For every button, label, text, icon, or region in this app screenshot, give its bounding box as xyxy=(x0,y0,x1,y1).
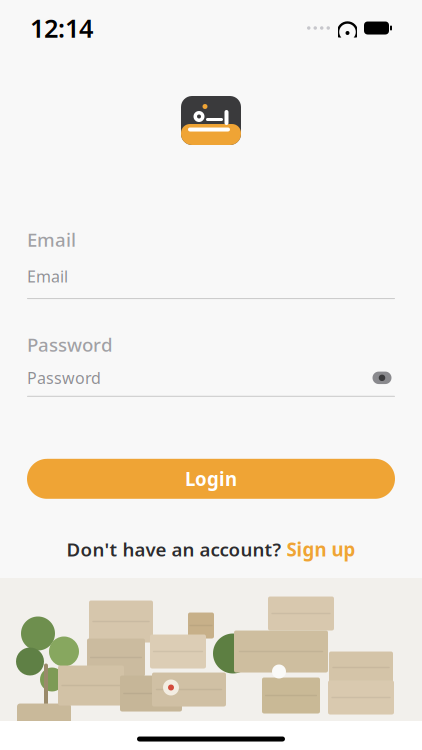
button[interactable]: Email xyxy=(27,252,395,299)
staticText: Sign up xyxy=(286,537,355,562)
staticText: Login xyxy=(185,466,237,491)
staticText: 12:14 xyxy=(30,11,93,45)
button[interactable]: Password xyxy=(27,357,395,397)
staticText: Email xyxy=(27,227,76,252)
staticText: Password xyxy=(27,367,101,388)
staticText: Email xyxy=(27,266,68,287)
staticText: Password xyxy=(27,332,113,357)
button[interactable]: Login xyxy=(27,459,395,499)
button[interactable]: Sign up xyxy=(286,537,355,562)
button[interactable]: Show password xyxy=(369,367,395,389)
staticText: Don't have an account? xyxy=(66,537,281,562)
